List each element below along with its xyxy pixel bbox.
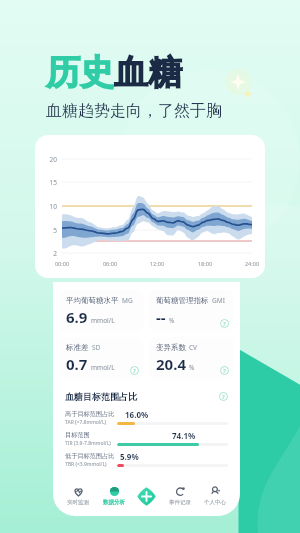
staticText: ? bbox=[222, 393, 225, 401]
button[interactable]: 事件记录 bbox=[167, 486, 193, 506]
staticText: 24:00 bbox=[236, 260, 265, 267]
staticText: % bbox=[169, 316, 175, 325]
button[interactable]: 数据分析 bbox=[101, 486, 127, 506]
staticText: 血糖 bbox=[114, 51, 182, 94]
staticText: ? bbox=[223, 320, 226, 328]
staticText: ? bbox=[133, 367, 136, 375]
staticText: % bbox=[189, 363, 195, 372]
button[interactable]: 目标范围 bbox=[65, 429, 228, 450]
staticText: 5.9% bbox=[120, 451, 139, 462]
button[interactable]: 低于目标范围占比 bbox=[65, 450, 228, 471]
staticText: 个人中心 bbox=[204, 499, 226, 506]
staticText: 平均葡萄糖水平 bbox=[66, 296, 119, 305]
staticText: TIR (3.9-7.8mmol/L) bbox=[65, 440, 111, 447]
staticText: 血糖目标范围占比 bbox=[65, 391, 137, 402]
staticText: 低于目标范围占比 bbox=[65, 452, 115, 460]
button[interactable]: Help bbox=[130, 366, 139, 375]
staticText: 血糖趋势走向，了然于胸 bbox=[46, 101, 222, 121]
staticText: mmol/L bbox=[91, 316, 115, 325]
staticText: -- bbox=[156, 307, 166, 327]
staticText: 标准差 bbox=[66, 343, 89, 352]
staticText: 历史 bbox=[46, 51, 114, 94]
staticText: 事件记录 bbox=[169, 499, 191, 506]
staticText: 0.7 bbox=[66, 354, 88, 374]
staticText: mmol/L bbox=[91, 363, 115, 372]
button[interactable]: Add record bbox=[136, 486, 157, 507]
button[interactable]: 个人中心 bbox=[202, 486, 228, 506]
staticText: 16.0% bbox=[125, 409, 149, 420]
button[interactable]: 变异系数 bbox=[149, 337, 234, 379]
staticText: 5 bbox=[35, 226, 57, 235]
button[interactable]: Help bbox=[219, 392, 228, 401]
button[interactable]: 实时监测 bbox=[65, 486, 91, 506]
staticText: 20 bbox=[35, 155, 57, 164]
staticText: 15 bbox=[35, 178, 57, 187]
staticText: 10 bbox=[35, 202, 57, 211]
staticText: SD bbox=[92, 343, 101, 352]
staticText: 20.4 bbox=[156, 354, 186, 374]
button[interactable]: 高于目标范围占比 bbox=[65, 408, 228, 429]
button[interactable]: 平均葡萄糖水平 bbox=[59, 290, 144, 332]
staticText: TBR (<3.9mmol/L) bbox=[65, 461, 107, 468]
staticText: 74.1% bbox=[172, 430, 196, 441]
staticText: CV bbox=[189, 343, 198, 352]
staticText: 目标范围 bbox=[65, 431, 90, 439]
staticText: TAR (>7.8mmol/L) bbox=[65, 419, 107, 426]
staticText: 数据分析 bbox=[103, 499, 125, 506]
staticText: 06:00 bbox=[94, 260, 126, 267]
staticText: MG bbox=[122, 296, 133, 305]
staticText: 变异系数 bbox=[156, 343, 186, 352]
button[interactable]: 葡萄糖管理指标 bbox=[149, 290, 234, 332]
staticText: 12:00 bbox=[141, 260, 173, 267]
staticText: 葡萄糖管理指标 bbox=[156, 296, 209, 305]
staticText: 高于目标范围占比 bbox=[65, 410, 115, 418]
staticText: ? bbox=[223, 367, 226, 375]
staticText: GMI bbox=[212, 296, 225, 305]
staticText: 6.9 bbox=[66, 307, 88, 327]
button[interactable]: Help bbox=[220, 366, 229, 375]
staticText: 18:00 bbox=[189, 260, 221, 267]
button[interactable]: Help bbox=[220, 319, 229, 328]
staticText: 00:00 bbox=[46, 260, 78, 267]
staticText: 2 bbox=[35, 249, 57, 258]
staticText: 实时监测 bbox=[67, 499, 89, 506]
button[interactable]: 标准差 bbox=[59, 337, 144, 379]
